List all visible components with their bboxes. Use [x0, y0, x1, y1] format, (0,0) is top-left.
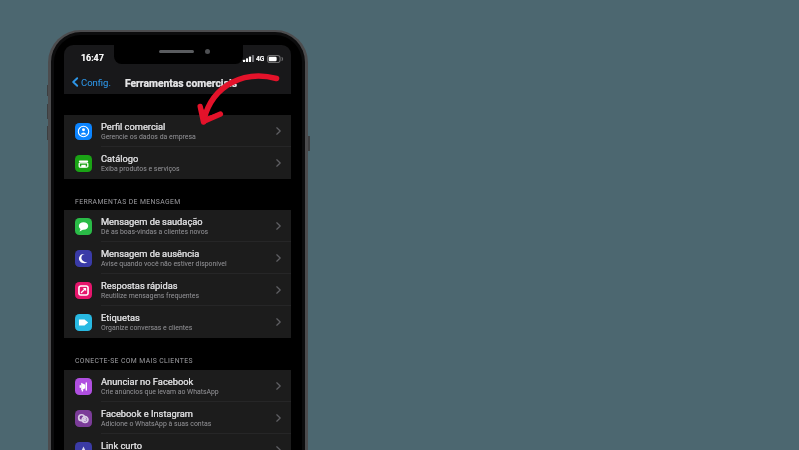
staticText: Dê as boas-vindas a clientes novos: [101, 228, 209, 236]
staticText: Ferramentas comerciais: [125, 77, 238, 89]
staticText: Link curto: [101, 440, 143, 450]
button[interactable]: Mensagem de saudação: [64, 210, 291, 242]
button[interactable]: Config.: [68, 69, 124, 95]
staticText: Mensagem de ausência: [101, 248, 200, 259]
staticText: FERRAMENTAS DE MENSAGEM: [75, 198, 181, 206]
staticText: Anunciar no Facebook: [101, 376, 194, 387]
staticText: Config.: [81, 77, 111, 88]
staticText: Facebook e Instagram: [101, 408, 193, 419]
staticText: Crie anúncios que levam ao WhatsApp: [101, 388, 219, 396]
staticText: Exiba produtos e serviços: [101, 165, 180, 173]
button[interactable]: Facebook e Instagram: [64, 402, 291, 434]
staticText: 4G: [256, 55, 265, 63]
staticText: Avise quando você não estiver disponível: [101, 260, 227, 268]
staticText: CONECTE-SE COM MAIS CLIENTES: [75, 357, 193, 365]
button[interactable]: Link curto: [64, 434, 291, 450]
button[interactable]: Mensagem de ausência: [64, 242, 291, 274]
staticText: Gerencie os dados da empresa: [101, 133, 196, 141]
other: Annotation arrow: [0, 0, 799, 450]
button[interactable]: Anunciar no Facebook: [64, 370, 291, 402]
staticText: Perfil comercial: [101, 121, 166, 132]
button[interactable]: Etiquetas: [64, 306, 291, 338]
staticText: Etiquetas: [101, 312, 140, 323]
staticText: Organize conversas e clientes: [101, 324, 193, 332]
staticText: Reutilize mensagens frequentes: [101, 292, 200, 300]
button[interactable]: Respostas rápidas: [64, 274, 291, 306]
staticText: Adicione o WhatsApp à suas contas: [101, 420, 212, 428]
button[interactable]: Catálogo: [64, 147, 291, 179]
staticText: Catálogo: [101, 153, 139, 164]
staticText: Respostas rápidas: [101, 280, 178, 291]
button[interactable]: Perfil comercial: [64, 115, 291, 147]
staticText: 16:47: [81, 53, 104, 64]
staticText: Mensagem de saudação: [101, 216, 203, 227]
